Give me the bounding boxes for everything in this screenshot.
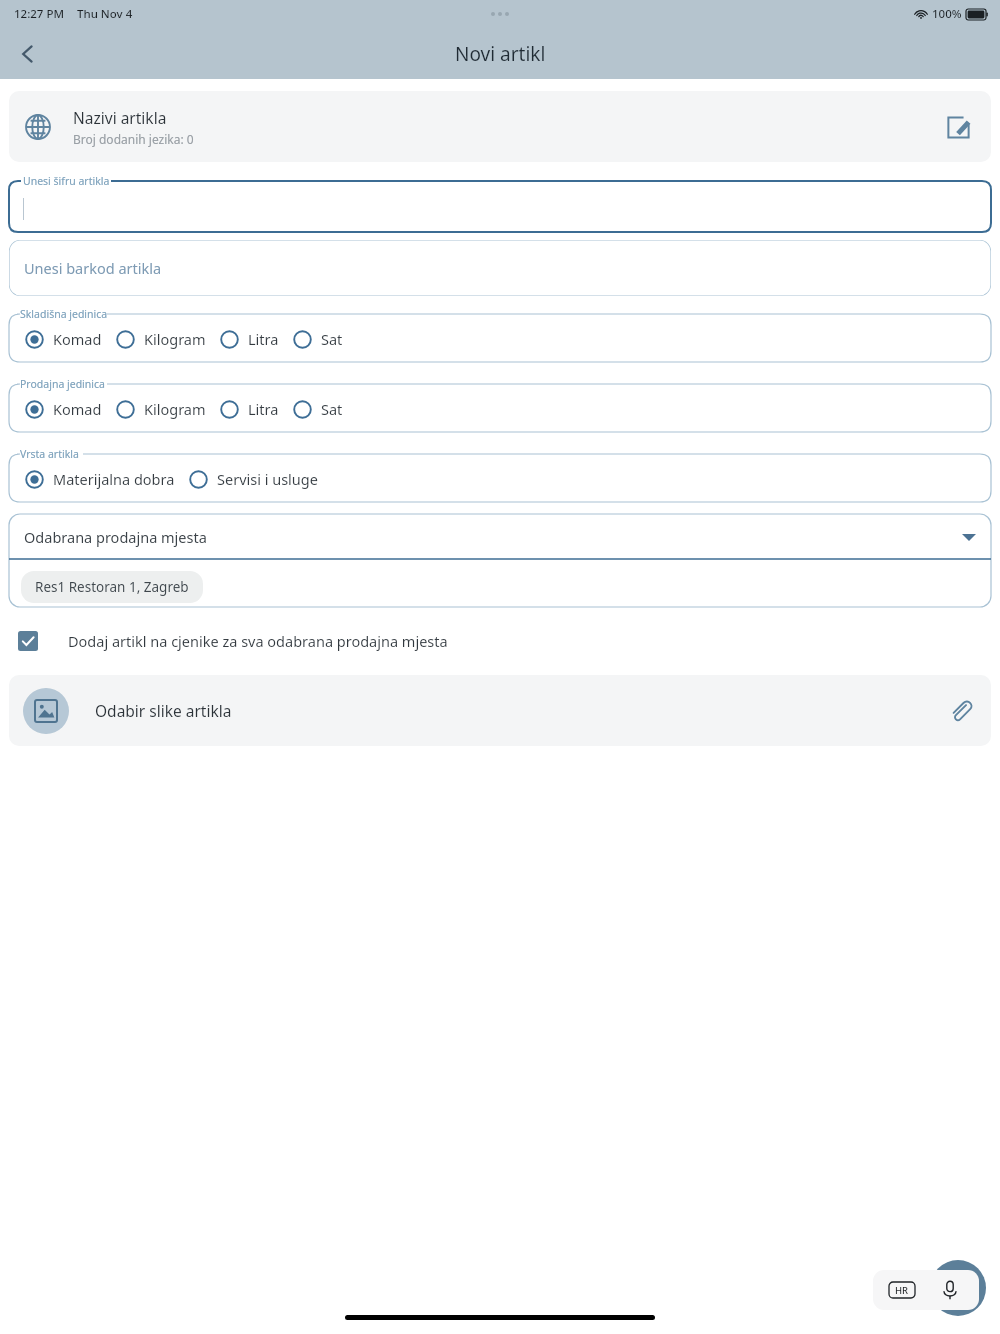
button[interactable]: Nazivi artikla <box>9 91 991 162</box>
button[interactable]: Natrag <box>6 32 50 76</box>
button[interactable]: Jezik HR <box>887 1275 917 1305</box>
staticText: Kilogram <box>144 399 206 419</box>
button[interactable] <box>9 172 991 232</box>
button[interactable]: Odabir slike artikla <box>9 675 991 746</box>
staticText: Litra <box>248 329 279 349</box>
staticText: Sat <box>321 329 343 349</box>
staticText: Komad <box>53 399 102 419</box>
button[interactable]: Sat <box>293 329 357 349</box>
staticText: 12:27 PM <box>14 6 65 22</box>
staticText: HR <box>895 1284 909 1297</box>
staticText: Prodajna jedinica <box>20 377 105 391</box>
staticText: Nazivi artikla <box>73 107 167 128</box>
staticText: 100% <box>932 6 962 22</box>
button[interactable]: Komad <box>25 329 116 349</box>
staticText: Unesi šifru artikla <box>23 174 110 188</box>
button[interactable]: Materijalna dobra <box>25 469 189 489</box>
staticText: Komad <box>53 329 102 349</box>
button[interactable]: Dodaj artikl na cjenike za sva odabrana … <box>9 629 991 653</box>
button[interactable]: Litra <box>220 329 293 349</box>
staticText: Sat <box>321 399 343 419</box>
staticText: Dodaj artikl na cjenike za sva odabrana … <box>68 631 448 651</box>
button[interactable]: Diktiranje <box>935 1275 965 1305</box>
button[interactable]: Spremi <box>930 1260 986 1316</box>
staticText: Servisi i usluge <box>217 469 318 489</box>
button[interactable]: Servisi i usluge <box>189 469 332 489</box>
button[interactable]: Sat <box>293 399 357 419</box>
button[interactable]: Unesi barkod artikla <box>9 240 991 296</box>
button[interactable]: Komad <box>25 399 116 419</box>
button[interactable]: Odabrana prodajna mjesta <box>9 514 991 559</box>
staticText: Kilogram <box>144 329 206 349</box>
staticText: Thu Nov 4 <box>77 6 133 22</box>
staticText: Unesi barkod artikla <box>24 258 162 278</box>
button[interactable]: Litra <box>220 399 293 419</box>
button[interactable]: Kilogram <box>116 399 220 419</box>
staticText: Materijalna dobra <box>53 469 175 489</box>
staticText: Litra <box>248 399 279 419</box>
button[interactable]: Res1 Restoran 1, Zagreb <box>21 571 203 603</box>
staticText: Odabir slike artikla <box>95 700 232 721</box>
staticText: Novi artikl <box>455 41 546 67</box>
staticText: Vrsta artikla <box>20 447 79 461</box>
staticText: Res1 Restoran 1, Zagreb <box>35 578 189 596</box>
staticText: Odabrana prodajna mjesta <box>24 527 207 547</box>
button[interactable]: Uredi nazive <box>941 110 975 144</box>
button[interactable]: Kilogram <box>116 329 220 349</box>
staticText: Skladišna jedinica <box>20 307 108 321</box>
button[interactable]: Priloži sliku <box>943 694 977 728</box>
staticText: Broj dodanih jezika: 0 <box>73 131 194 147</box>
